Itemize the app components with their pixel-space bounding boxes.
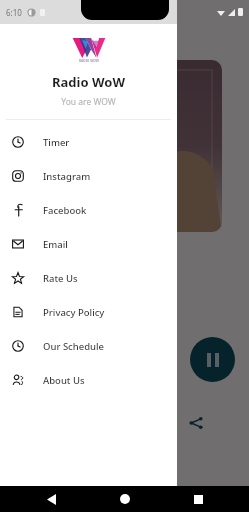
staticText: 6:10 <box>6 7 22 18</box>
staticText: Email <box>43 238 68 251</box>
button[interactable]: Share <box>183 410 209 436</box>
button[interactable]: Our Schedule <box>0 329 177 363</box>
staticText: You are WOW <box>61 96 116 108</box>
staticText: Timer <box>43 136 70 149</box>
button[interactable]: Privacy Policy <box>0 295 177 329</box>
button[interactable]: Recent apps <box>187 488 209 510</box>
button[interactable]: Pause <box>190 337 235 382</box>
staticText: Rate Us <box>43 272 78 285</box>
button[interactable]: Email <box>0 227 177 261</box>
staticText: Instagram <box>43 170 91 183</box>
button[interactable]: Timer <box>0 125 177 159</box>
staticText: Radio WoW <box>52 73 125 91</box>
button[interactable]: Instagram <box>0 159 177 193</box>
button[interactable]: About Us <box>0 363 177 397</box>
staticText: Privacy Policy <box>43 306 105 319</box>
button[interactable]: Facebook <box>0 193 177 227</box>
button[interactable]: Home <box>114 488 136 510</box>
staticText: RADIO WOW <box>79 59 99 63</box>
staticText: About Us <box>43 374 85 387</box>
button[interactable]: Rate Us <box>0 261 177 295</box>
staticText: Our Schedule <box>43 340 105 353</box>
staticText: Facebook <box>43 204 87 217</box>
button[interactable]: Back <box>40 488 62 510</box>
